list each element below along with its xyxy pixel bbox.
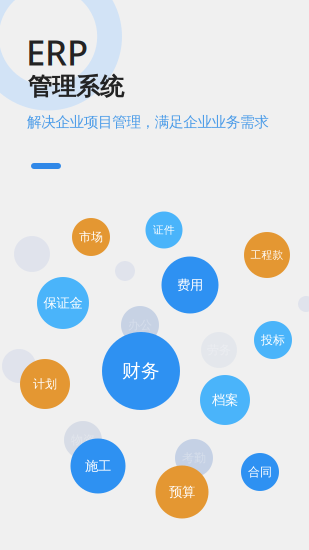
staticText: 费用 — [177, 277, 203, 293]
staticText: 工程款 — [250, 248, 283, 261]
staticText: 计划 — [33, 377, 57, 391]
button[interactable]: 投标 — [254, 321, 292, 359]
staticText: 投标 — [261, 333, 285, 347]
button[interactable]: 计划 — [20, 359, 70, 409]
staticText: 管理系统 — [28, 72, 124, 101]
button[interactable]: 财务 — [102, 332, 180, 410]
staticText: ERP — [26, 29, 88, 75]
button[interactable]: 合同 — [241, 453, 279, 491]
staticText: 预算 — [169, 484, 195, 500]
staticText: 考勤 — [182, 451, 206, 465]
button[interactable]: 预算 — [155, 465, 208, 518]
staticText: 合同 — [248, 465, 272, 479]
button[interactable]: 费用 — [161, 256, 218, 313]
staticText: 保证金 — [43, 295, 82, 311]
staticText: 施工 — [85, 458, 111, 474]
button[interactable]: 施工 — [70, 438, 125, 493]
staticText: 市场 — [79, 230, 103, 244]
staticText: 证件 — [153, 223, 175, 236]
button[interactable]: 工程款 — [244, 232, 290, 278]
button[interactable]: 保证金 — [37, 277, 89, 329]
staticText: 物资 — [71, 433, 95, 447]
button[interactable]: 档案 — [200, 375, 250, 425]
staticText: 解决企业项目管理，满足企业业务需求 — [27, 113, 269, 131]
staticText: 财务 — [122, 359, 160, 382]
staticText: 办公 — [128, 318, 152, 332]
button[interactable]: 证件 — [145, 211, 182, 248]
button[interactable]: 市场 — [72, 218, 110, 256]
staticText: 档案 — [212, 392, 238, 408]
